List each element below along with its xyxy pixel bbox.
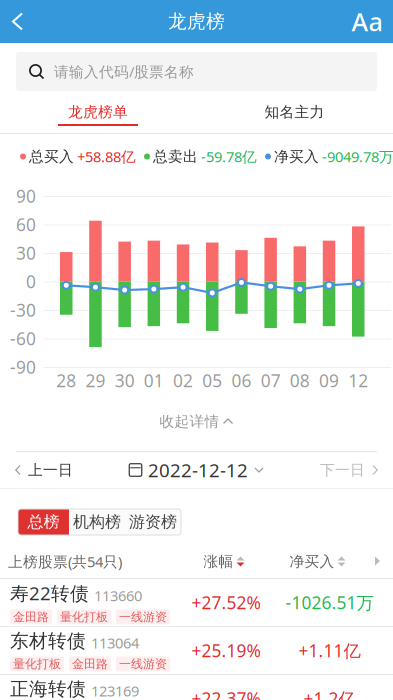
staticText: 机构榜: [73, 512, 121, 532]
button[interactable]: 寿22转债: [0, 579, 393, 627]
staticText: 09: [319, 369, 339, 392]
staticText: 金田路: [13, 609, 49, 624]
button[interactable]: 东材转债: [0, 627, 393, 675]
staticText: +1.2亿: [303, 687, 355, 700]
staticText: 游资榜: [129, 512, 177, 532]
button[interactable]: 机构榜: [69, 509, 125, 535]
button[interactable]: 收起详情: [0, 392, 393, 451]
staticText: -9049.78万: [322, 147, 393, 166]
staticText: -1026.51万: [285, 591, 373, 614]
staticText: 29: [85, 369, 105, 392]
staticText: 上榜股票(共54只): [8, 552, 122, 571]
staticText: 上一日: [28, 461, 73, 479]
staticText: 正海转债: [10, 677, 86, 700]
staticText: 113660: [94, 586, 142, 605]
staticText: 寿22转债: [10, 581, 89, 605]
staticText: 金田路: [72, 657, 108, 671]
button[interactable]: 下一日: [279, 450, 379, 490]
staticText: 60: [16, 213, 36, 236]
staticText: 28: [56, 369, 76, 392]
button[interactable]: 正海转债: [0, 675, 393, 700]
staticText: 113064: [91, 633, 139, 652]
staticText: 涨幅: [203, 552, 233, 570]
button[interactable]: 知名主力: [196, 100, 393, 133]
staticText: 龙虎榜单: [68, 103, 128, 121]
staticText: 总买入: [29, 147, 74, 165]
staticText: 量化打板: [60, 609, 108, 624]
staticText: 06: [231, 369, 251, 392]
staticText: 总卖出: [153, 147, 198, 165]
staticText: 0: [26, 270, 36, 293]
staticText: -60: [10, 327, 36, 350]
button[interactable]: 总榜: [18, 509, 69, 535]
staticText: 收起详情: [159, 412, 219, 430]
staticText: 08: [290, 369, 310, 392]
staticText: 30: [115, 369, 135, 392]
staticText: +25.19%: [191, 639, 260, 662]
staticText: 请输入代码/股票名称: [54, 62, 194, 81]
staticText: 12: [348, 369, 368, 392]
button[interactable]: More columns: [365, 545, 391, 577]
staticText: -30: [10, 298, 36, 321]
button[interactable]: 请输入代码/股票名称: [0, 43, 393, 100]
staticText: 净买入: [274, 147, 319, 165]
button[interactable]: 龙虎榜单: [0, 100, 196, 133]
staticText: 02: [173, 369, 193, 392]
staticText: +22.37%: [191, 687, 260, 700]
staticText: Aa: [351, 5, 382, 38]
staticText: 量化打板: [13, 657, 61, 671]
staticText: +58.88亿: [77, 147, 136, 166]
button[interactable]: 2022-12-12: [129, 450, 264, 490]
staticText: -90: [10, 355, 36, 378]
staticText: -59.78亿: [201, 147, 257, 166]
staticText: 90: [16, 184, 36, 207]
staticText: 一线游资: [119, 609, 167, 624]
button[interactable]: 净买入: [270, 545, 365, 577]
staticText: 123169: [91, 681, 139, 700]
staticText: 05: [202, 369, 222, 392]
staticText: +1.11亿: [298, 639, 360, 662]
staticText: 01: [144, 369, 164, 392]
staticText: 2022-12-12: [148, 458, 248, 482]
button[interactable]: 上一日: [14, 450, 114, 490]
staticText: 07: [261, 369, 281, 392]
button[interactable]: 涨幅: [178, 545, 270, 577]
staticText: +27.52%: [191, 591, 260, 614]
button[interactable]: Font size: [347, 6, 387, 36]
staticText: 一线游资: [119, 657, 167, 671]
staticText: 净买入: [289, 552, 334, 570]
button[interactable]: 游资榜: [125, 509, 181, 535]
staticText: 下一日: [320, 461, 365, 479]
staticText: 龙虎榜: [168, 10, 225, 33]
staticText: 知名主力: [264, 103, 324, 121]
staticText: 东材转债: [10, 629, 86, 652]
staticText: 30: [16, 241, 36, 264]
staticText: 总榜: [27, 512, 59, 532]
button[interactable]: Back: [6, 6, 46, 36]
